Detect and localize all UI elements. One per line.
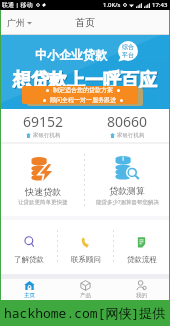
staticText: 1.0K/s — [103, 1, 121, 9]
button[interactable]: Learn about loans — [1, 220, 57, 274]
other: Contact advisor — [79, 236, 92, 249]
other: Learn about loans — [23, 236, 36, 249]
button[interactable]: 我的 — [113, 279, 169, 300]
button[interactable]: 80660 — [85, 109, 169, 142]
staticText: 想贷款上一呼百应 — [14, 70, 158, 93]
staticText: 贷款测算 — [109, 185, 145, 196]
staticText: 贷款流程 — [127, 255, 157, 264]
button[interactable]: 产品 — [57, 279, 113, 300]
button[interactable]: Contact advisor — [58, 220, 113, 274]
staticText: 家银行机构 — [33, 132, 61, 139]
staticText: 制定适合您的贷款方案 — [53, 86, 113, 94]
staticText: 综合 — [122, 43, 134, 51]
staticText: 80660 — [107, 112, 148, 131]
staticText: 了解贷款 — [14, 255, 44, 264]
staticText: 联通 | 移动 — [2, 1, 33, 9]
staticText: 家银行机构 — [117, 132, 145, 139]
staticText: 产品 — [80, 292, 91, 299]
staticText: 广州 — [7, 17, 25, 28]
staticText: 中小企业贷款 — [35, 47, 107, 62]
button[interactable]: 广州 — [7, 17, 32, 28]
staticText: 主页 — [24, 292, 35, 299]
button[interactable]: Loan process — [114, 220, 169, 274]
staticText: 顾问全程一对一服务跟进 — [50, 96, 116, 104]
staticText: 我的 — [136, 292, 147, 299]
staticText: 首页 — [75, 16, 95, 29]
button[interactable]: 贷款测算 — [85, 144, 169, 216]
button[interactable]: 快速贷款 — [1, 144, 84, 216]
button[interactable]: 主页 — [1, 279, 57, 300]
staticText: 想贷款上一呼百应 — [13, 69, 157, 92]
staticText: 联系顾问 — [71, 255, 101, 264]
staticText: 17:43 — [152, 1, 168, 9]
staticText: 快速贷款 — [25, 186, 61, 197]
staticText: 能贷多少?测算器帮您解决 — [96, 198, 159, 206]
staticText: 平台 — [122, 51, 134, 59]
other: Loan process — [135, 236, 148, 249]
staticText: 69152 — [23, 112, 64, 131]
staticText: hackhome.com[网侠]提供 — [4, 304, 166, 322]
button[interactable]: 69152 — [1, 109, 85, 142]
staticText: 让贷款更简单更快捷 — [18, 199, 68, 206]
